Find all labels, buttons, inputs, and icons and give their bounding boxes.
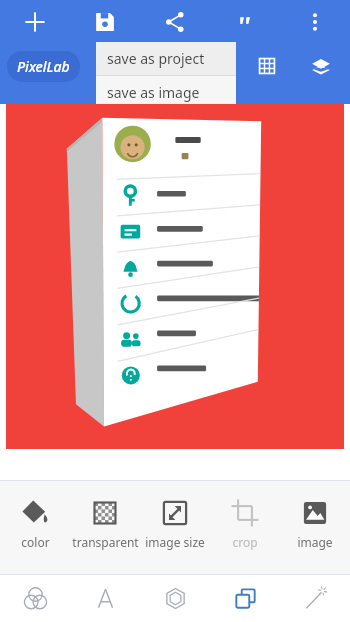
staticText: image size [145, 534, 205, 550]
button[interactable]: Layers [292, 44, 350, 88]
button[interactable]: PixelLab [7, 51, 80, 82]
button[interactable]: Save [70, 0, 140, 44]
button[interactable]: Grid [242, 44, 292, 88]
staticText: image [297, 534, 333, 550]
staticText: color [21, 534, 50, 550]
button[interactable]: Quote [210, 0, 280, 44]
staticText: save as project [107, 49, 205, 68]
button[interactable]: Add [0, 0, 70, 44]
button[interactable]: transparent [70, 492, 140, 575]
staticText: transparent [72, 534, 139, 550]
staticText: save as image [107, 83, 200, 102]
button[interactable]: Share [140, 0, 210, 44]
button[interactable]: Shapes [140, 575, 210, 622]
button[interactable]: Layers [210, 575, 280, 622]
staticText: crop [232, 534, 258, 550]
button[interactable]: More options [280, 0, 350, 44]
staticText: PixelLab [17, 57, 70, 76]
button[interactable]: save as project [96, 42, 236, 75]
button[interactable]: save as image [96, 76, 236, 109]
button[interactable]: Color filters [0, 575, 70, 622]
button[interactable]: crop [210, 492, 280, 575]
button[interactable]: image size [140, 492, 210, 575]
button[interactable]: Effects [280, 575, 350, 622]
button[interactable]: color [0, 492, 70, 575]
button[interactable]: Text [70, 575, 140, 622]
button[interactable]: image [280, 492, 350, 575]
